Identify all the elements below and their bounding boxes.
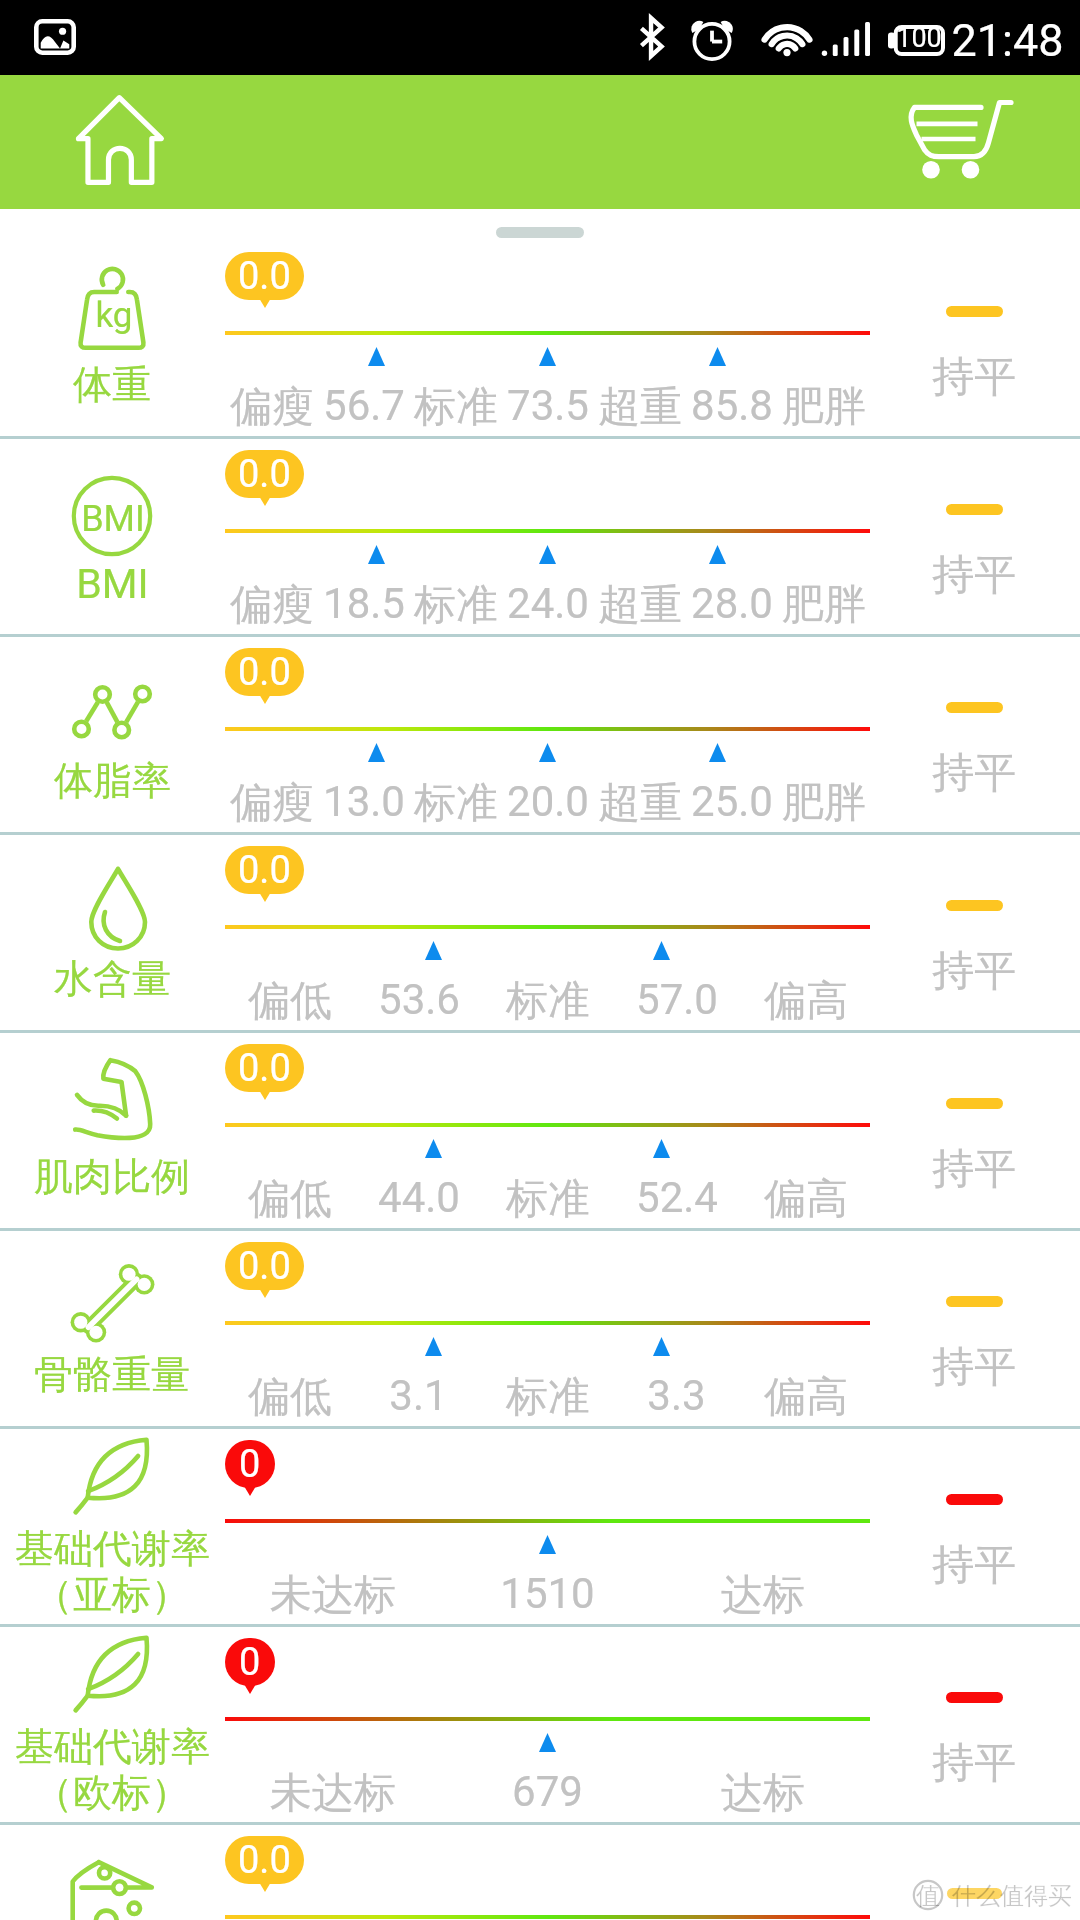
staticText: 0 xyxy=(239,1442,261,1487)
staticText: 体重 xyxy=(73,360,151,409)
staticText: 679 xyxy=(512,1767,583,1816)
staticText: 骨骼重量 xyxy=(34,1350,190,1399)
staticText: 值 xyxy=(916,1881,940,1911)
staticText: 57.0 xyxy=(636,975,718,1024)
button[interactable]: 骨骼重量 xyxy=(0,1229,1080,1427)
staticText: 超重 xyxy=(598,579,682,632)
staticText: 偏瘦 xyxy=(230,777,314,830)
button[interactable]: 0.0 xyxy=(0,1823,1080,1920)
staticText: 44.0 xyxy=(378,1173,460,1222)
button[interactable]: BMI xyxy=(0,437,1080,635)
staticText: 24.0 xyxy=(507,579,589,628)
staticText: 标准 xyxy=(506,1371,590,1424)
staticText: 持平 xyxy=(932,1539,1016,1592)
button[interactable]: kg xyxy=(0,239,1080,437)
staticText: 3.3 xyxy=(647,1371,706,1420)
staticText: 持平 xyxy=(932,747,1016,800)
staticText: 超重 xyxy=(598,777,682,830)
staticText: 持平 xyxy=(932,945,1016,998)
staticText: 偏高 xyxy=(764,1173,848,1226)
staticText: 偏高 xyxy=(764,1371,848,1424)
staticText: 持平 xyxy=(932,549,1016,602)
staticText: BMI xyxy=(76,560,149,608)
staticText: 什么值得买 xyxy=(952,1881,1072,1911)
button[interactable]: 肌肉比例 xyxy=(0,1031,1080,1229)
staticText: 0.0 xyxy=(238,254,291,299)
staticText: 53.6 xyxy=(378,975,460,1024)
staticText: 偏低 xyxy=(248,975,332,1028)
button[interactable]: 体脂率 xyxy=(0,635,1080,833)
staticText: 0.0 xyxy=(238,848,291,893)
staticText: 偏低 xyxy=(248,1371,332,1424)
staticText: （亚标） xyxy=(34,1570,190,1619)
staticText: 0.0 xyxy=(238,650,291,695)
staticText: 0.0 xyxy=(238,1838,291,1883)
staticText: 持平 xyxy=(932,1341,1016,1394)
staticText: 18.5 xyxy=(323,579,405,628)
staticText: 肌肉比例 xyxy=(34,1152,190,1201)
staticText: 0.0 xyxy=(238,1046,291,1091)
staticText: 未达标 xyxy=(270,1767,396,1820)
staticText: 标准 xyxy=(414,777,498,830)
button[interactable]: 水含量 xyxy=(0,833,1080,1031)
staticText: 肥胖 xyxy=(782,381,866,434)
button[interactable]: Shopping cart xyxy=(891,78,1031,200)
staticText: BMI xyxy=(81,498,145,540)
staticText: 28.0 xyxy=(691,579,773,628)
staticText: 标准 xyxy=(506,975,590,1028)
staticText: 25.0 xyxy=(691,777,773,826)
staticText: 水含量 xyxy=(54,954,171,1003)
staticText: 偏瘦 xyxy=(230,579,314,632)
staticText: 未达标 xyxy=(270,1569,396,1622)
staticText: 基础代谢率 xyxy=(15,1722,210,1771)
staticText: 肥胖 xyxy=(782,579,866,632)
staticText: （欧标） xyxy=(34,1768,190,1817)
staticText: 0.0 xyxy=(238,1244,291,1289)
button[interactable]: 基础代谢率 xyxy=(0,1427,1080,1625)
staticText: 达标 xyxy=(721,1767,805,1820)
staticText: 肥胖 xyxy=(782,777,866,830)
button[interactable]: 基础代谢率 xyxy=(0,1625,1080,1823)
button[interactable]: Home xyxy=(54,79,186,201)
staticText: 73.5 xyxy=(507,381,589,430)
staticText: 0.0 xyxy=(238,452,291,497)
staticText: 体脂率 xyxy=(54,756,171,805)
staticText: 偏低 xyxy=(248,1173,332,1226)
staticText: 3.1 xyxy=(389,1371,448,1420)
staticText: 持平 xyxy=(932,351,1016,404)
staticText: 标准 xyxy=(414,381,498,434)
staticText: 56.7 xyxy=(323,381,405,430)
staticText: 达标 xyxy=(721,1569,805,1622)
staticText: 1510 xyxy=(500,1569,595,1618)
staticText: 偏高 xyxy=(764,975,848,1028)
staticText: 标准 xyxy=(506,1173,590,1226)
staticText: 85.8 xyxy=(691,381,773,430)
staticText: 偏瘦 xyxy=(230,381,314,434)
staticText: 21:48 xyxy=(951,14,1064,67)
staticText: 0 xyxy=(239,1640,261,1685)
staticText: 基础代谢率 xyxy=(15,1524,210,1573)
staticText: kg xyxy=(95,295,133,336)
staticText: 100 xyxy=(896,22,942,54)
staticText: 超重 xyxy=(598,381,682,434)
staticText: 20.0 xyxy=(507,777,589,826)
staticText: 持平 xyxy=(932,1143,1016,1196)
staticText: 持平 xyxy=(932,1737,1016,1790)
staticText: 13.0 xyxy=(323,777,405,826)
staticText: 52.4 xyxy=(636,1173,718,1222)
staticText: 标准 xyxy=(414,579,498,632)
